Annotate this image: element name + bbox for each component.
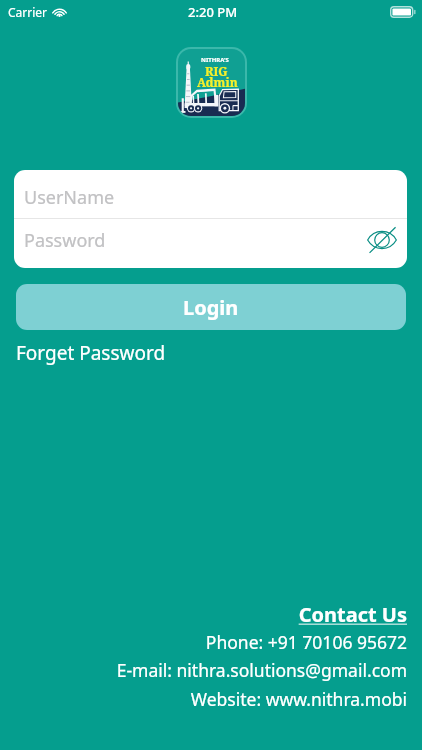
button[interactable]: Password [14, 219, 407, 268]
staticText: Password [24, 228, 106, 253]
staticText: NITHRA'S [201, 56, 229, 64]
staticText: 2:20 PM [188, 3, 238, 21]
button[interactable]: Contact Us [298, 601, 407, 628]
button[interactable]: E-mail: nithra.solutions@gmail.com [116, 658, 407, 682]
staticText: Forget Password [16, 340, 166, 366]
button[interactable]: Forget Password [16, 340, 166, 366]
staticText: Phone: +91 70106 95672 [205, 630, 407, 654]
staticText: RIG [205, 63, 228, 79]
staticText: UserName [24, 185, 115, 210]
button[interactable]: UserName [14, 170, 407, 218]
button[interactable]: Phone: +91 70106 95672 [205, 630, 407, 654]
button[interactable]: Website: www.nithra.mobi [190, 687, 407, 711]
staticText: E-mail: nithra.solutions@gmail.com [116, 658, 407, 682]
staticText: Login [183, 294, 239, 321]
button[interactable]: Show password [364, 222, 400, 258]
button[interactable]: Login [16, 284, 406, 330]
staticText: Website: www.nithra.mobi [190, 687, 407, 711]
staticText: Admin [197, 74, 238, 90]
staticText: Contact Us [298, 601, 407, 628]
staticText: Carrier [8, 4, 48, 20]
